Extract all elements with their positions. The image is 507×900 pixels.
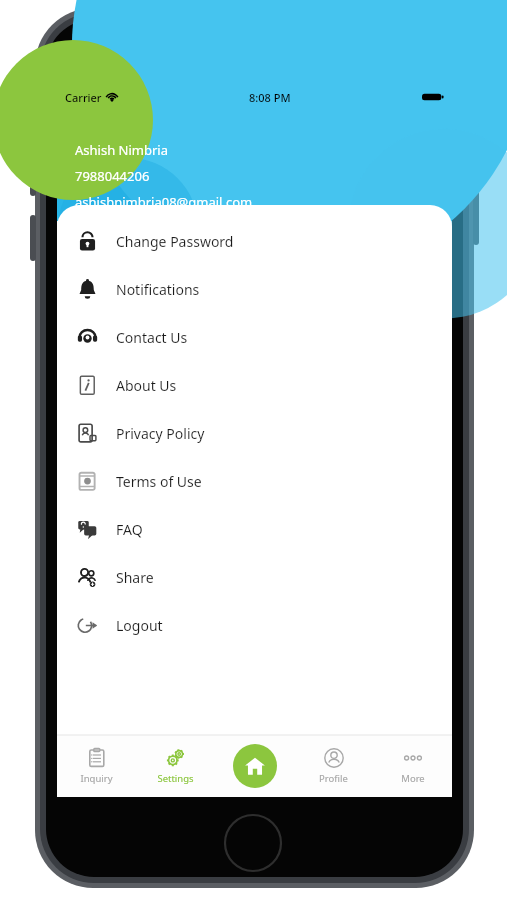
button[interactable]: Home bbox=[233, 744, 277, 788]
staticText: Ashish Nimbria bbox=[75, 141, 168, 159]
staticText: Notifications bbox=[116, 280, 200, 299]
staticText: Carrier bbox=[65, 90, 102, 105]
button[interactable]: Notifications bbox=[57, 265, 452, 313]
staticText: Share bbox=[116, 568, 154, 587]
staticText: 8:08 PM bbox=[249, 90, 291, 105]
staticText: Contact Us bbox=[116, 328, 188, 347]
button[interactable]: Terms of Use bbox=[57, 457, 452, 505]
staticText: Settings bbox=[157, 772, 194, 785]
staticText: About Us bbox=[116, 376, 177, 395]
button[interactable]: Share bbox=[57, 553, 452, 601]
staticText: Terms of Use bbox=[116, 472, 202, 491]
staticText: FAQ bbox=[116, 520, 143, 539]
staticText: Privacy Policy bbox=[116, 424, 205, 443]
button[interactable]: Privacy Policy bbox=[57, 409, 452, 457]
button[interactable]: More bbox=[373, 735, 452, 797]
button[interactable]: Settings bbox=[136, 735, 215, 797]
button[interactable]: Change Password bbox=[57, 217, 452, 265]
staticText: ashishnimbria08@gmail.com bbox=[75, 193, 253, 211]
button[interactable]: Inquiry bbox=[57, 735, 136, 797]
button[interactable]: Profile bbox=[294, 735, 373, 797]
button[interactable]: Contact Us bbox=[57, 313, 452, 361]
staticText: Logout bbox=[116, 616, 163, 635]
staticText: Profile bbox=[319, 772, 348, 785]
button[interactable]: FAQ bbox=[57, 505, 452, 553]
staticText: More bbox=[401, 772, 425, 785]
button[interactable]: About Us bbox=[57, 361, 452, 409]
staticText: 7988044206 bbox=[75, 167, 150, 185]
button[interactable]: Logout bbox=[57, 601, 452, 649]
staticText: Inquiry bbox=[80, 772, 113, 785]
staticText: Change Password bbox=[116, 232, 234, 251]
